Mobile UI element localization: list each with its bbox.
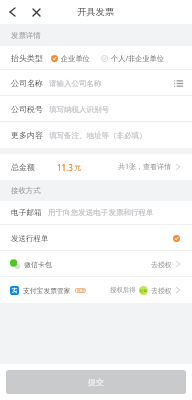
button[interactable]: Choose company — [172, 77, 185, 90]
staticText: 总金额 — [11, 162, 35, 172]
button[interactable]: 发送行程单 — [0, 225, 192, 251]
staticText: 微信卡包 — [24, 260, 52, 269]
staticText: 请输入公司名称 — [49, 79, 102, 88]
staticText: 电子邮箱 — [11, 208, 42, 218]
staticText: 发送行程单 — [11, 234, 49, 243]
staticText: 元 — [74, 163, 81, 172]
button[interactable]: 提交 — [6, 370, 186, 394]
button[interactable]: 企业单位 — [51, 54, 90, 63]
staticText: 公司税号 — [11, 104, 43, 114]
button[interactable]: 总金额 — [0, 154, 192, 180]
staticText: 公司名称 — [11, 78, 43, 88]
staticText: 推荐 — [77, 288, 85, 293]
staticText: 11.3 — [57, 162, 73, 173]
staticText: 填写纳税人识别号 — [49, 105, 109, 114]
staticText: 填写备注、地址等（非必填） — [49, 131, 147, 140]
staticText: 共1张，查看详情 — [118, 162, 172, 172]
staticText: 用于向您发送电子发票和行程单 — [48, 208, 154, 218]
button[interactable]: 公司税号 — [0, 96, 192, 122]
staticText: 支付宝发票管家 — [23, 286, 71, 295]
staticText: 去授权 — [151, 260, 172, 269]
button[interactable]: 个人/非企业单位 — [101, 53, 164, 63]
staticText: 提交 — [88, 377, 104, 387]
button[interactable]: 支付宝发票管家 — [0, 277, 192, 303]
button[interactable]: Close — [24, 0, 48, 24]
staticText: 去授权 — [151, 286, 172, 295]
staticText: 接收方式 — [11, 186, 41, 195]
staticText: 发票详情 — [11, 31, 41, 40]
staticText: 开具发票 — [77, 6, 115, 18]
staticText: 抬头类型 — [11, 53, 43, 63]
button[interactable]: 公司名称 — [0, 70, 192, 96]
button[interactable]: 电子邮箱 — [0, 201, 192, 225]
staticText: 更多内容 — [11, 130, 43, 140]
staticText: 授权后得 — [110, 286, 136, 294]
staticText: 企业单位 — [61, 54, 90, 63]
button[interactable]: Back — [0, 0, 24, 24]
button[interactable]: 微信卡包 — [0, 251, 192, 277]
staticText: 红包 — [140, 289, 147, 293]
button[interactable]: 更多内容 — [0, 122, 192, 148]
staticText: 个人/非企业单位 — [111, 53, 164, 63]
